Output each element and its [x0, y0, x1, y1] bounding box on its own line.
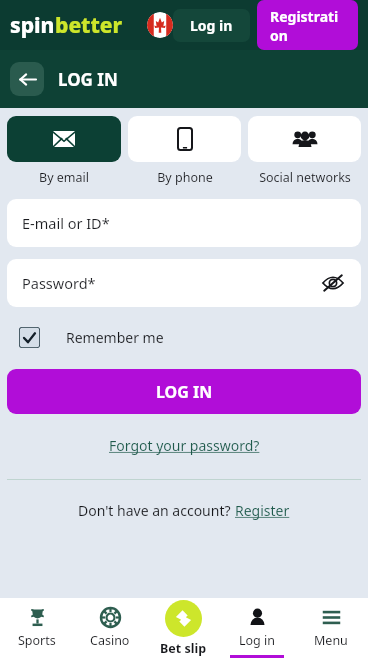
- staticText: Menu: [314, 632, 348, 649]
- button[interactable]: Language Canada: [147, 12, 173, 38]
- button[interactable]: LOG IN: [7, 369, 361, 414]
- button[interactable]: Casino: [73, 598, 146, 660]
- staticText: E-mail or ID*: [22, 213, 110, 233]
- button[interactable]: Bet slip: [146, 598, 220, 660]
- staticText: Casino: [90, 632, 130, 649]
- button[interactable]: By email: [7, 116, 121, 186]
- staticText: Social networks: [259, 169, 351, 186]
- button[interactable]: Social networks: [248, 116, 361, 186]
- button[interactable]: Remember me: [7, 327, 361, 348]
- button[interactable]: E-mail or ID*: [7, 199, 361, 247]
- staticText: LOG IN: [58, 68, 118, 91]
- button[interactable]: Forgot your password?: [105, 432, 264, 459]
- button[interactable]: Log in: [220, 598, 294, 660]
- staticText: Register: [235, 501, 290, 520]
- button[interactable]: By phone: [128, 116, 241, 186]
- staticText: Registration: [270, 7, 345, 43]
- staticText: Log in: [239, 632, 276, 649]
- staticText: By phone: [157, 169, 213, 186]
- button[interactable]: Password*: [7, 259, 361, 307]
- staticText: By email: [39, 169, 89, 186]
- button[interactable]: Show password: [320, 270, 346, 296]
- button[interactable]: Menu: [294, 598, 368, 660]
- staticText: Remember me: [66, 328, 164, 347]
- staticText: Don't have an account?: [78, 501, 235, 520]
- staticText: better: [55, 11, 123, 40]
- staticText: Sports: [18, 632, 56, 649]
- staticText: Forgot your password?: [109, 436, 260, 455]
- staticText: LOG IN: [156, 381, 213, 403]
- staticText: Password*: [22, 273, 96, 293]
- button[interactable]: Back: [10, 62, 44, 96]
- button[interactable]: Sports: [0, 598, 73, 660]
- staticText: Bet slip: [160, 640, 207, 657]
- staticText: spin: [10, 11, 55, 40]
- button[interactable]: Register: [235, 501, 290, 520]
- button[interactable]: Registration: [257, 0, 358, 50]
- staticText: Log in: [190, 16, 233, 35]
- button[interactable]: Log in: [173, 9, 250, 42]
